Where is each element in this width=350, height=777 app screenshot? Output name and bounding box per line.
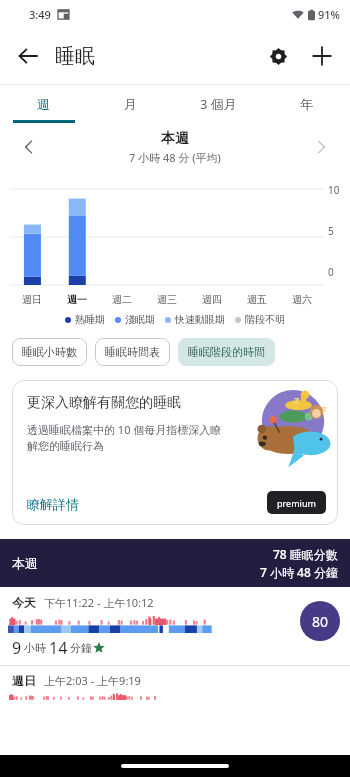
staticText: 10 [328,183,340,197]
staticText: 上午2:03 - 上午9:19 [44,673,141,688]
staticText: 快速動眼期 [175,313,225,326]
staticText: 週 [37,96,50,112]
staticText: 本週 [161,130,189,148]
staticText: 小時 [24,641,46,655]
button[interactable]: 瞭解詳情 [27,496,79,512]
staticText: 7 小時 48 分鐘 [260,564,338,580]
staticText: 91% [318,7,340,22]
staticText: 年 [300,96,313,112]
staticText: 5 [328,224,334,238]
staticText: 睡眠小時數 [22,345,77,359]
button[interactable]: 睡眠階段的時間 [178,338,275,366]
staticText: 週四 [202,293,222,306]
staticText: z [294,392,300,407]
staticText: 本週 [12,555,38,571]
button[interactable]: Back [6,34,50,78]
staticText: 週日 [22,293,42,306]
staticText: 週一 [67,293,87,306]
staticText: 週五 [247,293,267,306]
staticText: 14 [49,637,68,659]
staticText: 月 [124,96,137,112]
staticText: 9 [12,637,22,659]
staticText: 睡眠階段的時間 [188,345,265,359]
staticText: 0 [328,265,334,279]
button[interactable]: 週日 [0,666,350,706]
button[interactable]: 更深入瞭解有關您的睡眠 [12,380,338,525]
staticText: 睡眠 [55,44,95,69]
staticText: 3 個月 [200,95,237,113]
button[interactable]: Add [300,34,344,78]
button[interactable]: Previous week [12,130,46,164]
staticText: 熟睡期 [75,313,105,326]
staticText: 今天 [12,595,36,610]
button[interactable]: 睡眠小時數 [12,338,87,366]
staticText: 週六 [292,293,312,306]
button[interactable]: 3 個月 [174,85,262,123]
button[interactable]: 週 [0,85,87,123]
button[interactable]: Settings [256,34,300,78]
staticText: 更深入瞭解有關您的睡眠 [27,394,181,412]
staticText: 週二 [112,293,132,306]
staticText: 下午11:22 - 上午10:12 [44,595,154,610]
staticText: 80 [312,612,329,631]
staticText: 7 小時 48 分 (平均) [129,150,221,165]
staticText: z [322,402,327,414]
staticText: premium [277,497,316,509]
staticText: 透過睡眠檔案中的 10 個每月指標深入瞭解您的睡眠行為 [27,422,228,453]
button[interactable]: 今天 [0,587,350,665]
staticText: 睡眠時間表 [105,345,160,359]
staticText: 階段不明 [245,313,285,326]
button[interactable]: Next week [304,130,338,164]
staticText: 週三 [157,293,177,306]
staticText: 78 睡眠分數 [273,546,338,562]
button[interactable]: 年 [262,85,350,123]
staticText: 週日 [12,673,36,688]
button[interactable]: premium [267,491,326,514]
staticText: 分鐘 [70,641,92,655]
button[interactable]: 月 [87,85,174,123]
staticText: 淺眠期 [125,313,155,326]
staticText: 3:49 [29,7,51,22]
button[interactable]: 睡眠時間表 [95,338,170,366]
